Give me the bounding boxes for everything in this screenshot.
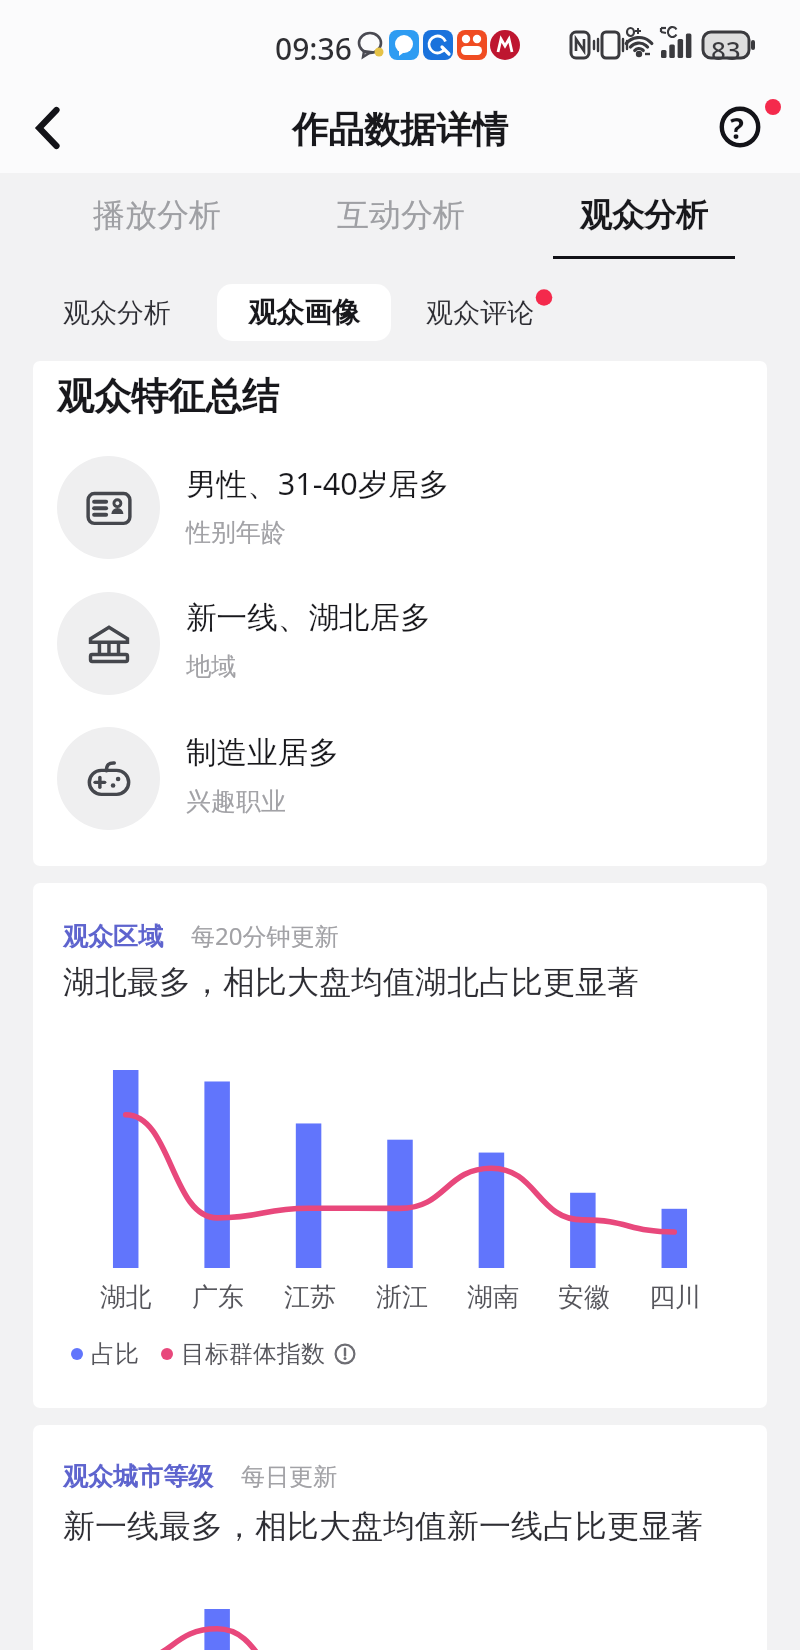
staticText: 湖南: [467, 1281, 519, 1314]
button[interactable]: 播放分析: [35, 173, 279, 265]
button[interactable]: Info: [332, 1341, 358, 1367]
button[interactable]: 新一线、湖北居多: [33, 592, 767, 695]
staticText: 83: [711, 32, 741, 67]
staticText: 兴趣职业: [186, 786, 286, 817]
staticText: 观众评论: [426, 296, 534, 330]
staticText: 制造业居多: [186, 734, 339, 773]
staticText: 江苏: [284, 1281, 336, 1314]
staticText: 地域: [186, 651, 236, 682]
staticText: 目标群体指数: [181, 1339, 325, 1369]
staticText: 新一线、湖北居多: [186, 599, 431, 638]
staticText: 互动分析: [337, 195, 465, 235]
staticText: 占比: [91, 1339, 139, 1369]
staticText: 广东: [192, 1281, 244, 1314]
button[interactable]: 观众画像: [217, 284, 391, 341]
staticText: ?: [730, 108, 744, 147]
button[interactable]: 男性、31-40岁居多: [33, 456, 767, 559]
staticText: 观众特征总结: [57, 373, 279, 420]
button[interactable]: Back: [13, 97, 79, 163]
button[interactable]: 观众评论: [391, 284, 564, 341]
staticText: 浙江: [376, 1281, 428, 1314]
staticText: 观众分析: [580, 195, 708, 235]
button[interactable]: 观众分析: [0, 284, 217, 341]
staticText: 新一线最多，相比大盘均值新一线占比更显著: [63, 1506, 703, 1546]
staticText: 湖北: [100, 1281, 152, 1314]
button[interactable]: 观众分析: [522, 173, 765, 265]
button[interactable]: 互动分析: [279, 173, 522, 265]
staticText: 观众城市等级: [63, 1461, 213, 1492]
staticText: 作品数据详情: [292, 107, 508, 152]
staticText: 男性、31-40岁居多: [186, 462, 450, 504]
staticText: 性别年龄: [186, 517, 286, 548]
staticText: 四川: [649, 1281, 701, 1314]
staticText: 每20分钟更新: [191, 919, 339, 952]
staticText: 湖北最多，相比大盘均值湖北占比更显著: [63, 962, 639, 1002]
staticText: 09:36: [275, 28, 352, 69]
button[interactable]: Help: [708, 95, 772, 159]
staticText: 播放分析: [93, 195, 221, 235]
staticText: 每日更新: [241, 1462, 337, 1492]
staticText: 观众区域: [63, 921, 163, 952]
button[interactable]: 制造业居多: [33, 727, 767, 830]
staticText: 观众画像: [248, 295, 360, 330]
staticText: 安徽: [558, 1281, 610, 1314]
staticText: 观众分析: [63, 296, 171, 330]
